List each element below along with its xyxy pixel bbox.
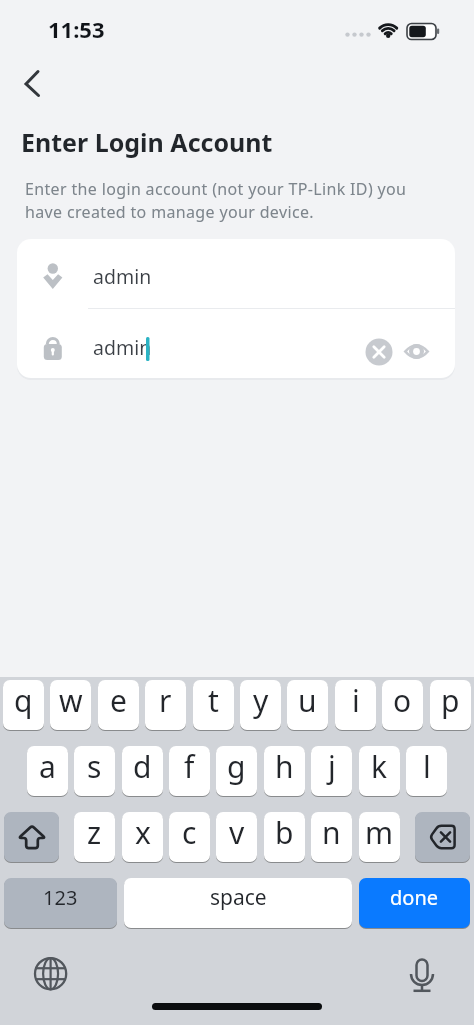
button[interactable]: j xyxy=(311,746,352,796)
staticText: 11:53 xyxy=(48,14,105,44)
button[interactable]: o xyxy=(382,680,423,730)
staticText: j xyxy=(328,746,336,787)
staticText: q xyxy=(14,680,33,721)
staticText: z xyxy=(87,812,102,853)
staticText: y xyxy=(253,680,269,721)
staticText: space xyxy=(210,883,267,912)
button[interactable]: admin xyxy=(17,309,455,378)
button[interactable]: h xyxy=(264,746,305,796)
staticText: done xyxy=(390,884,439,911)
staticText: p xyxy=(441,680,460,721)
button[interactable]: a xyxy=(27,746,68,796)
staticText: x xyxy=(135,812,151,853)
staticText: s xyxy=(87,746,102,787)
staticText: o xyxy=(393,680,412,721)
staticText: l xyxy=(423,746,431,787)
button[interactable]: g xyxy=(216,746,257,796)
button[interactable]: admin xyxy=(17,239,455,308)
button[interactable]: k xyxy=(359,746,400,796)
staticText: c xyxy=(182,812,197,853)
button[interactable]: d xyxy=(122,746,163,796)
button[interactable]: v xyxy=(216,812,257,862)
button[interactable]: s xyxy=(74,746,115,796)
staticText: m xyxy=(365,812,394,853)
button[interactable] xyxy=(4,812,59,862)
staticText: d xyxy=(133,746,152,787)
button[interactable]: c xyxy=(169,812,210,862)
staticText: t xyxy=(208,680,219,721)
staticText: k xyxy=(371,746,388,787)
button[interactable]: f xyxy=(169,746,210,796)
button[interactable] xyxy=(402,950,444,996)
button[interactable]: w xyxy=(50,680,91,730)
button[interactable]: t xyxy=(193,680,234,730)
button[interactable]: q xyxy=(3,680,44,730)
staticText: u xyxy=(298,680,317,721)
button[interactable]: done xyxy=(359,878,470,928)
staticText: a xyxy=(39,746,56,787)
button[interactable]: b xyxy=(264,812,305,862)
staticText: g xyxy=(227,746,246,787)
staticText: w xyxy=(59,680,83,721)
button[interactable]: m xyxy=(359,812,400,862)
button[interactable] xyxy=(16,62,58,104)
button[interactable] xyxy=(30,953,72,995)
button[interactable]: r xyxy=(145,680,186,730)
button[interactable]: p xyxy=(430,680,471,730)
staticText: Enter Login Account xyxy=(21,125,273,159)
button[interactable]: z xyxy=(74,812,115,862)
staticText: r xyxy=(159,680,172,721)
button[interactable]: e xyxy=(98,680,139,730)
staticText: Enter the login account (not your TP-Lin… xyxy=(25,178,407,223)
button[interactable]: space xyxy=(124,878,352,928)
button[interactable]: l xyxy=(406,746,447,796)
staticText: admin xyxy=(93,263,152,290)
button[interactable]: n xyxy=(311,812,352,862)
staticText: n xyxy=(322,812,341,853)
button[interactable]: u xyxy=(287,680,328,730)
staticText: f xyxy=(184,746,195,787)
button[interactable]: 123 xyxy=(4,878,117,928)
staticText: 123 xyxy=(43,884,78,911)
staticText: e xyxy=(110,680,127,721)
staticText: admin xyxy=(93,334,152,361)
button[interactable]: y xyxy=(240,680,281,730)
button[interactable] xyxy=(415,812,470,862)
staticText: i xyxy=(352,680,360,721)
staticText: v xyxy=(229,812,245,853)
button[interactable]: i xyxy=(335,680,376,730)
staticText: b xyxy=(275,812,294,853)
staticText: h xyxy=(275,746,294,787)
button[interactable]: x xyxy=(122,812,163,862)
